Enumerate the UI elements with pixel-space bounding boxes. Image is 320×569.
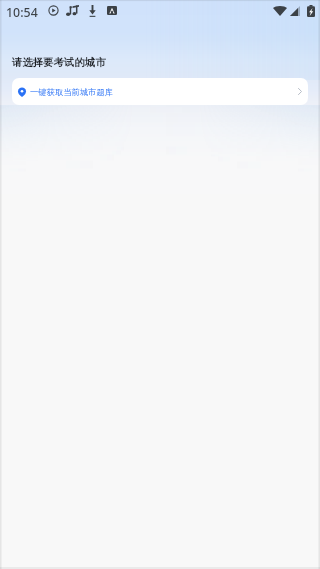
button[interactable]: 一键获取当前城市题库 [12,78,308,105]
staticText: 一键获取当前城市题库 [30,87,113,97]
staticText: 请选择要考试的城市 [12,56,106,69]
staticText: 10:54 [6,4,38,21]
